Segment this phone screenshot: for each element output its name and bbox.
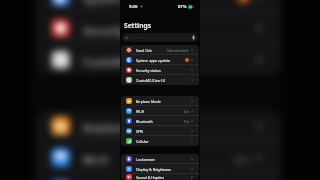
button[interactable]: Airplane Mode [35, 110, 281, 142]
button[interactable]: Saml Orb [121, 45, 199, 55]
button[interactable]: System apps update [35, 0, 281, 12]
button[interactable]: CustoM/UI.ber14 [35, 44, 281, 75]
staticText: VPN [136, 129, 144, 134]
staticText: Ultimate limit [167, 48, 189, 53]
staticText: Saml Orb [136, 48, 152, 53]
button[interactable]: Display & Brightness [121, 164, 199, 174]
staticText: On [234, 151, 250, 167]
button[interactable]: Search [122, 33, 198, 42]
staticText: Lockscreen [136, 157, 155, 162]
staticText: Bluetooth [136, 119, 153, 124]
button[interactable]: Airplane Mode [121, 96, 199, 106]
staticText: System apps update [136, 58, 171, 63]
staticText: Cellular [136, 139, 149, 144]
button[interactable]: Sound & Haptics [121, 174, 199, 180]
staticText: On [184, 119, 189, 124]
staticText: On [184, 109, 189, 114]
staticText: Display & Brightness [136, 167, 171, 172]
button[interactable]: CustoM/UI.ber14 [121, 75, 199, 85]
staticText: Airplane Mode [136, 99, 161, 104]
staticText: Airplane Mode [83, 120, 161, 135]
button[interactable]: Wi-Fi [35, 142, 281, 173]
staticText: Sound & Haptics [136, 175, 164, 180]
button[interactable]: VPN [121, 126, 199, 136]
button[interactable]: Lockscreen [121, 154, 199, 164]
button[interactable]: Bluetooth [35, 173, 281, 180]
button[interactable]: System apps update [121, 55, 199, 65]
button[interactable]: Cellular [121, 136, 199, 146]
staticText: System apps update [83, 0, 193, 6]
button[interactable]: Security status [121, 65, 199, 75]
staticText: CustoM/UI.ber14 [83, 53, 174, 69]
staticText: Security status [136, 68, 161, 73]
staticText: CustoM/UI.ber14 [136, 78, 165, 83]
staticText: Wi-Fi [83, 151, 111, 167]
staticText: 9:30 [129, 4, 138, 10]
staticText: 87% [178, 4, 187, 10]
staticText: Settings [124, 21, 152, 30]
staticText: Security status [83, 22, 161, 38]
button[interactable]: Bluetooth [121, 116, 199, 126]
staticText: Search [131, 35, 143, 40]
button[interactable]: Security status [35, 12, 281, 44]
button[interactable]: Wi-Fi [121, 106, 199, 116]
staticText: Wi-Fi [136, 109, 145, 114]
